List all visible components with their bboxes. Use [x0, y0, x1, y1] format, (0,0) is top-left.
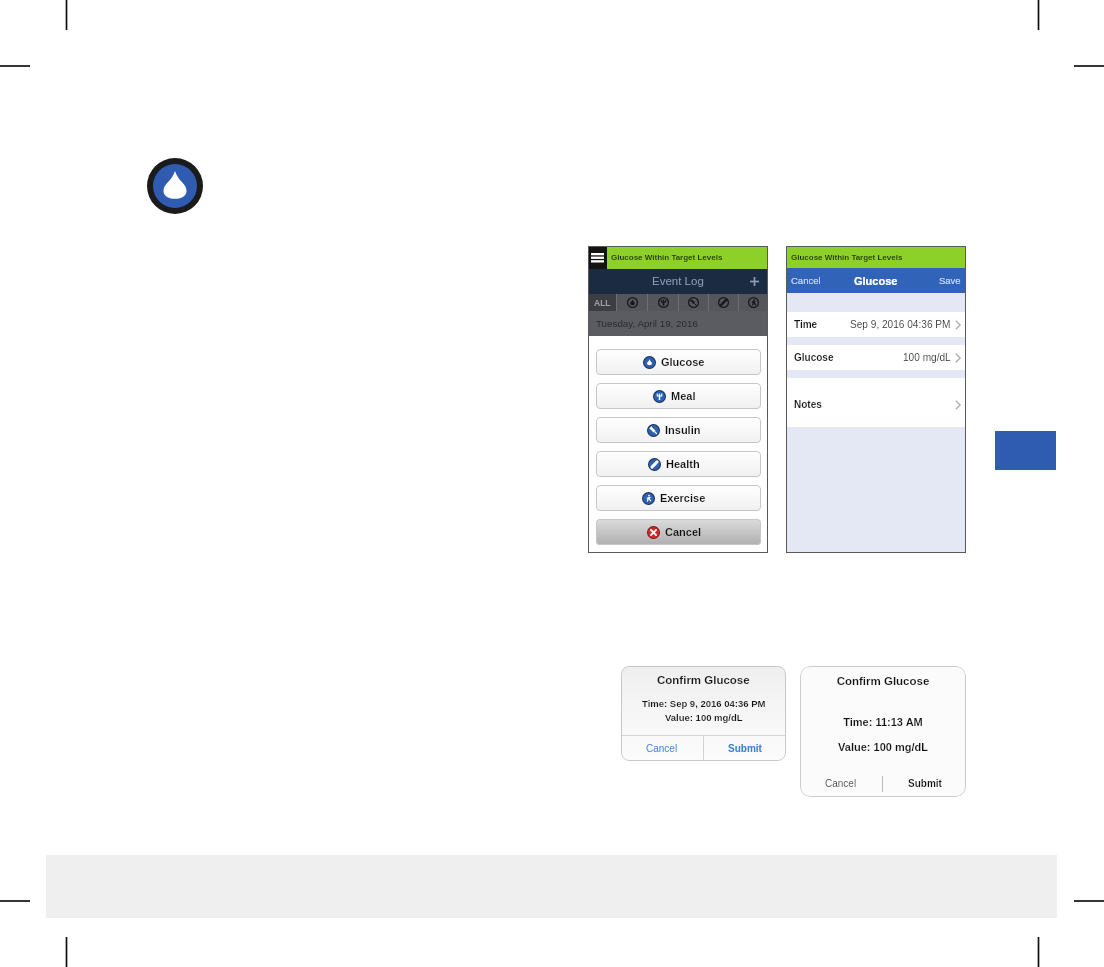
button[interactable]: ALL — [588, 294, 616, 311]
staticText: Event Log — [652, 275, 704, 288]
button[interactable]: Save — [934, 268, 966, 293]
button[interactable]: Exercise — [596, 485, 761, 511]
button[interactable]: Glucose — [596, 349, 761, 375]
staticText: Cancel — [825, 778, 857, 789]
button[interactable]: Submit — [883, 770, 966, 797]
button[interactable]: Cancel — [800, 770, 882, 797]
staticText: 100 mg/dL — [903, 352, 951, 363]
staticText: Exercise — [660, 492, 706, 504]
staticText: Time — [794, 319, 818, 330]
button[interactable]: Cancel — [621, 736, 703, 761]
staticText: Cancel — [646, 743, 678, 754]
staticText: Value: 100 mg/dL — [800, 741, 966, 753]
staticText: Notes — [794, 399, 822, 410]
button[interactable]: Notes — [786, 378, 966, 427]
staticText: Tuesday, April 19, 2016 — [596, 318, 698, 329]
staticText: Glucose — [854, 275, 898, 287]
button[interactable]: Cancel — [786, 268, 826, 293]
button[interactable]: Meal filter — [648, 294, 678, 311]
button[interactable]: Add event — [748, 275, 761, 288]
staticText: Submit — [908, 778, 942, 789]
button[interactable]: Insulin — [596, 417, 761, 443]
button[interactable]: Glucose — [786, 345, 966, 370]
staticText: Insulin — [665, 424, 701, 436]
staticText: Cancel — [791, 275, 821, 286]
staticText: Sep 9, 2016 04:36 PM — [850, 319, 951, 330]
staticText: Submit — [728, 743, 762, 754]
button[interactable]: Menu — [588, 246, 607, 269]
staticText: Glucose Within Target Levels — [611, 253, 723, 262]
button[interactable]: Meal — [596, 383, 761, 409]
staticText: Confirm Glucose — [657, 674, 750, 687]
staticText: Time: Sep 9, 2016 04:36 PM — [642, 698, 766, 709]
button[interactable]: Cancel — [596, 519, 761, 545]
button[interactable]: Health filter — [709, 294, 738, 311]
staticText: ALL — [594, 298, 611, 307]
staticText: Confirm Glucose — [800, 675, 966, 688]
staticText: Glucose — [794, 352, 834, 363]
button[interactable]: Glucose filter — [617, 294, 647, 311]
staticText: Value: 100 mg/dL — [665, 712, 743, 723]
staticText: Glucose Within Target Levels — [791, 253, 903, 262]
staticText: Time: 11:13 AM — [800, 716, 966, 728]
staticText: Cancel — [665, 526, 702, 538]
button[interactable]: Insulin filter — [679, 294, 708, 311]
other: Glucose app logo — [147, 158, 203, 214]
button[interactable]: Exercise filter — [739, 294, 768, 311]
button[interactable]: Submit — [704, 736, 786, 761]
button[interactable]: Time — [786, 312, 966, 337]
staticText: Save — [939, 275, 961, 286]
staticText: Meal — [671, 390, 696, 402]
button[interactable]: Health — [596, 451, 761, 477]
staticText: Health — [666, 458, 700, 470]
staticText: Glucose — [661, 356, 705, 368]
